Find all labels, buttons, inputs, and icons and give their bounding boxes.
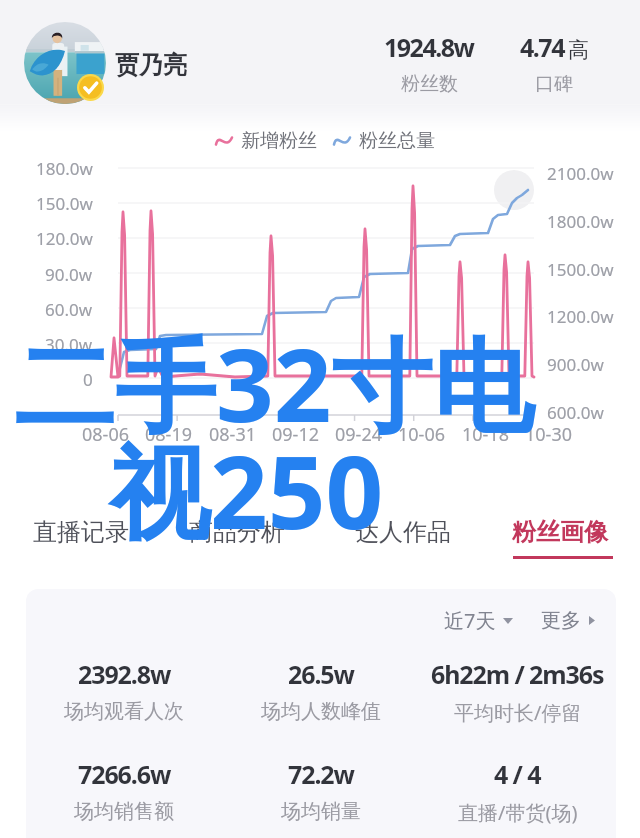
staticText: 贾乃亮 [115, 50, 187, 80]
staticText: 6h22m / 2m36s [431, 657, 604, 691]
staticText: 26.5w [288, 657, 354, 691]
staticText: 场均人数峰值 [261, 699, 381, 724]
staticText: 口碑 [535, 72, 573, 96]
staticText: 场均销售额 [74, 799, 174, 824]
staticText: 新增粉丝 [241, 129, 317, 153]
staticText: 7266.6w [78, 757, 171, 791]
staticText: 180.0w [36, 157, 93, 179]
staticText: 1500.0w [547, 258, 614, 280]
staticText: 09-12 [272, 422, 319, 447]
staticText: 0 [83, 368, 93, 390]
staticText: 二手32寸电 [14, 314, 534, 452]
staticText: 4 / 4 [494, 757, 541, 791]
staticText: 90.0w [45, 263, 93, 285]
button[interactable]: 粉丝画像 [512, 512, 616, 560]
staticText: 达人作品 [355, 517, 451, 547]
staticText: 08-19 [145, 422, 192, 447]
staticText: 1924.8w [384, 30, 474, 64]
other: Profile avatar [24, 22, 106, 104]
staticText: 近7天 [444, 607, 496, 634]
staticText: 120.0w [36, 227, 93, 249]
staticText: 60.0w [45, 298, 93, 320]
staticText: 高 [568, 37, 589, 63]
staticText: 150.0w [36, 192, 93, 214]
staticText: 更多 [541, 608, 581, 633]
staticText: 1200.0w [547, 305, 614, 327]
staticText: 10-30 [525, 422, 572, 447]
staticText: 粉丝数 [401, 72, 458, 96]
staticText: 600.0w [547, 401, 604, 423]
staticText: 2100.0w [547, 162, 614, 184]
staticText: 10-06 [398, 422, 445, 447]
staticText: 10-18 [462, 422, 509, 447]
button[interactable]: 近7天 [441, 603, 516, 638]
staticText: 08-31 [209, 422, 256, 447]
staticText: 08-06 [82, 422, 129, 447]
button[interactable]: 直播记录 [33, 512, 137, 560]
staticText: 09-24 [335, 422, 382, 447]
button[interactable]: 更多 [538, 604, 598, 637]
staticText: 视250 [109, 421, 384, 559]
button[interactable]: 商品分析 [189, 512, 293, 560]
staticText: 场均观看人次 [64, 699, 184, 724]
staticText: 900.0w [547, 353, 604, 375]
button[interactable]: 达人作品 [355, 512, 459, 560]
staticText: 直播/带货(场) [458, 799, 578, 826]
staticText: 商品分析 [189, 517, 285, 547]
staticText: 直播记录 [33, 517, 129, 547]
staticText: 4.74 [520, 30, 564, 64]
staticText: 30.0w [45, 333, 93, 355]
staticText: 2392.8w [78, 657, 171, 691]
staticText: 平均时长/停留 [454, 699, 582, 726]
staticText: 粉丝总量 [359, 129, 435, 153]
staticText: 场均销量 [281, 799, 361, 824]
staticText: 72.2w [288, 757, 354, 791]
staticText: 1800.0w [547, 210, 614, 232]
staticText: 粉丝画像 [512, 517, 608, 547]
